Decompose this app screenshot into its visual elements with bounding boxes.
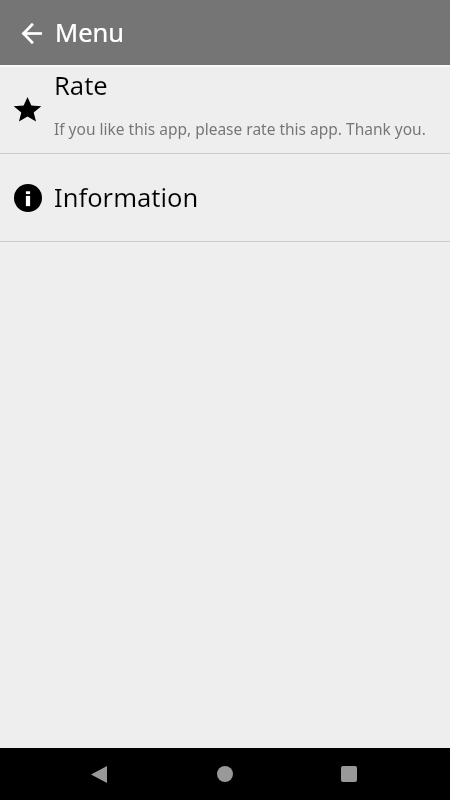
staticText: If you like this app, please rate this a…: [54, 118, 426, 139]
button[interactable]: Information: [0, 154, 450, 241]
button[interactable]: Rate: [0, 67, 450, 153]
button[interactable]: Navigate up: [8, 9, 56, 57]
button[interactable]: Home: [201, 750, 249, 798]
button[interactable]: Back: [75, 750, 123, 798]
staticText: Information: [54, 180, 199, 215]
staticText: Rate: [54, 68, 108, 103]
staticText: Menu: [55, 15, 125, 50]
button[interactable]: Recent apps: [325, 750, 373, 798]
